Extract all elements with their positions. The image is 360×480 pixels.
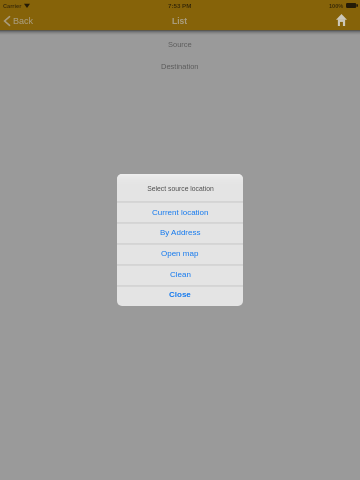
staticText: 100% bbox=[329, 3, 344, 9]
button[interactable]: Close bbox=[117, 287, 243, 306]
button[interactable]: Open map bbox=[117, 245, 243, 264]
staticText: Carrier bbox=[3, 3, 22, 9]
staticText: By Address bbox=[160, 228, 201, 237]
staticText: Current location bbox=[152, 208, 209, 217]
button[interactable]: Home bbox=[328, 14, 360, 28]
staticText: Back bbox=[13, 16, 34, 26]
staticText: List bbox=[172, 16, 188, 25]
staticText: Select source location bbox=[147, 185, 214, 193]
staticText: Open map bbox=[161, 249, 199, 258]
button[interactable]: Clean bbox=[117, 266, 243, 285]
button[interactable]: Current location bbox=[117, 203, 243, 222]
staticText: Destination bbox=[161, 62, 199, 70]
button[interactable]: Back bbox=[0, 14, 40, 28]
button[interactable]: By Address bbox=[117, 224, 243, 243]
staticText: Close bbox=[169, 290, 191, 299]
staticText: Source bbox=[168, 40, 192, 48]
staticText: 7:53 PM bbox=[168, 2, 192, 9]
staticText: Clean bbox=[170, 270, 191, 279]
